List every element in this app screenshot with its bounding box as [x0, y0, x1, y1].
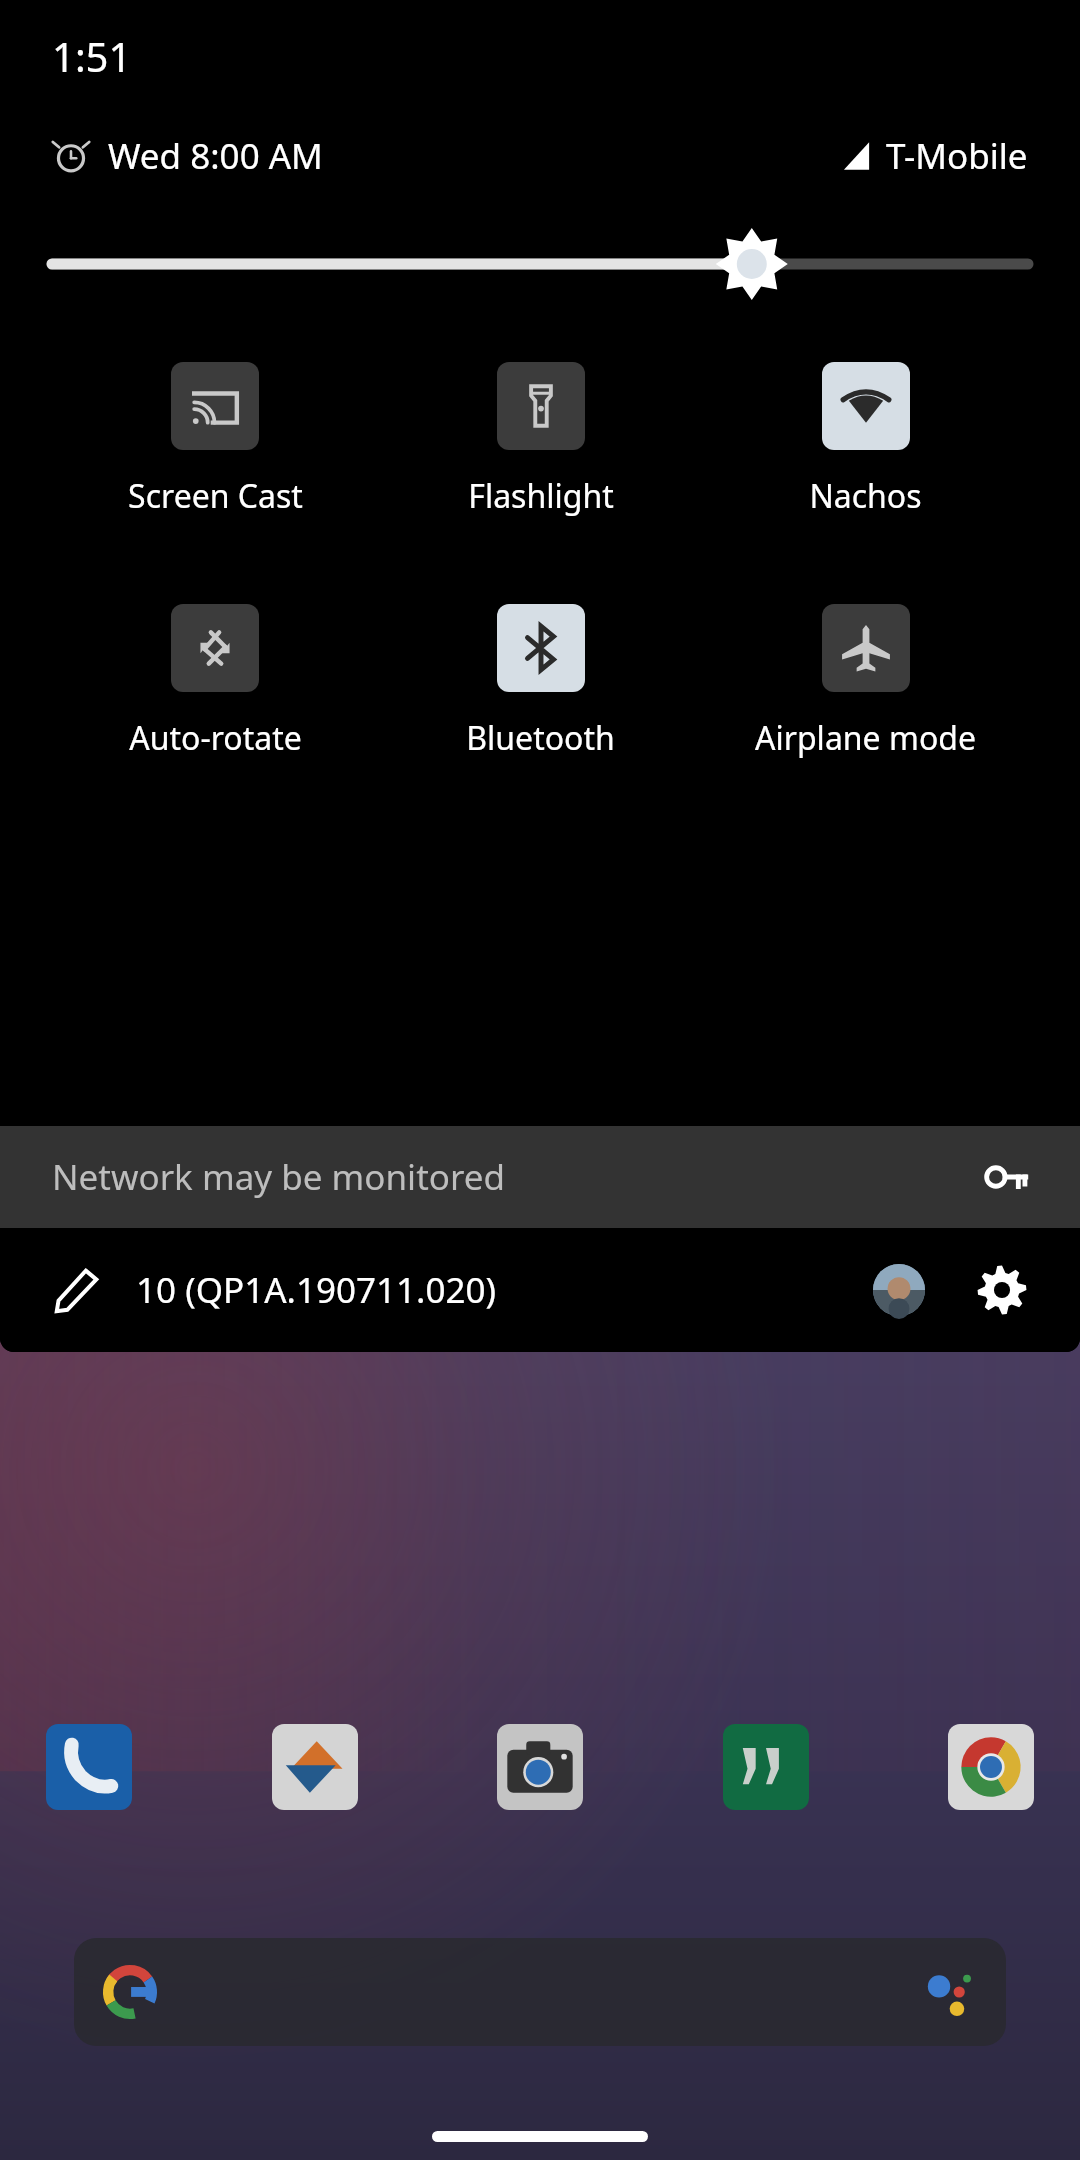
button[interactable]: Screen Cast	[52, 362, 378, 518]
staticText: Screen Cast	[128, 474, 303, 518]
button[interactable]: Edit tiles	[46, 1259, 108, 1321]
button[interactable]: Camera	[497, 1724, 583, 1810]
staticText: Bluetooth	[466, 716, 615, 760]
staticText: Auto-rotate	[129, 716, 302, 760]
button[interactable]: Airplane mode	[703, 604, 1028, 760]
button[interactable]: Bluetooth	[378, 604, 703, 760]
staticText: Flashlight	[468, 474, 614, 518]
button[interactable]: 10 (QP1A.190711.020)	[136, 1266, 496, 1314]
staticText: Airplane mode	[755, 716, 976, 760]
button[interactable]: Auto-rotate	[52, 604, 378, 760]
staticText: Wed 8:00 AM	[108, 132, 323, 180]
staticText: 1:51	[52, 29, 132, 83]
staticText: Nachos	[809, 474, 922, 518]
button[interactable]: Drive	[272, 1724, 358, 1810]
staticText: Network may be monitored	[52, 1153, 505, 1201]
button[interactable]: Hangouts	[723, 1724, 809, 1810]
button[interactable]: Settings	[970, 1258, 1034, 1322]
button[interactable]: Flashlight	[378, 362, 703, 518]
button[interactable]: Network may be monitored	[0, 1126, 1080, 1228]
button[interactable]: Brightness	[0, 200, 1080, 328]
button[interactable]: Nachos	[703, 362, 1028, 518]
button[interactable]	[74, 1938, 1006, 2046]
button[interactable]: Phone	[46, 1724, 132, 1810]
staticText: T-Mobile	[886, 132, 1028, 180]
button[interactable]: Chrome	[948, 1724, 1034, 1810]
button[interactable]: Wed 8:00 AM	[52, 132, 323, 180]
button[interactable]: User account	[868, 1259, 930, 1321]
